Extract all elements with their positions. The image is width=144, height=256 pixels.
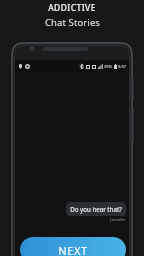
staticText: 39% <box>104 64 112 69</box>
staticText: Jennifer <box>110 217 126 223</box>
staticText: Chat Stories <box>45 16 100 29</box>
staticText: Do you hear that? <box>70 205 122 213</box>
button[interactable]: Do you hear that? <box>66 202 126 216</box>
staticText: ADDICTIVE <box>48 2 96 14</box>
staticText: 9:57 <box>118 64 126 69</box>
button[interactable]: NEXT <box>20 237 126 256</box>
staticText: NEXT <box>58 243 88 256</box>
